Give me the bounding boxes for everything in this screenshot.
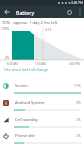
staticText: Cell standby: [15, 117, 38, 122]
staticText: 11%: [74, 83, 81, 88]
staticText: 6:00 AM: [7, 62, 18, 66]
button[interactable]: Android System: [0, 96, 84, 113]
staticText: 0%: [5, 56, 10, 60]
button[interactable]: Screen: [0, 79, 84, 96]
button[interactable]: Use since last full charge: [4, 67, 49, 72]
button[interactable]: Navigate up: [0, 6, 14, 18]
staticText: 4:00 PM: [69, 62, 80, 66]
staticText: 3:46 PM: [71, 1, 83, 5]
staticText: Android System: [15, 100, 45, 105]
staticText: 3:13: [45, 28, 52, 32]
button[interactable]: Phone idle: [0, 129, 84, 146]
staticText: 100%: [1, 27, 10, 31]
staticText: Battery: [16, 9, 35, 16]
staticText: 2%: [76, 117, 81, 122]
staticText: Screen: [15, 83, 28, 88]
staticText: Phone idle: [15, 133, 35, 138]
staticText: 70% - approx. 1 day 2 hrs left: [2, 20, 58, 26]
button[interactable]: More options: [75, 6, 84, 18]
staticText: 3%: [76, 100, 81, 105]
button[interactable]: Help: [64, 6, 75, 18]
button[interactable]: Cell standby: [0, 113, 84, 130]
staticText: 1:00 AM: [35, 62, 46, 66]
staticText: 2%: [76, 133, 81, 138]
